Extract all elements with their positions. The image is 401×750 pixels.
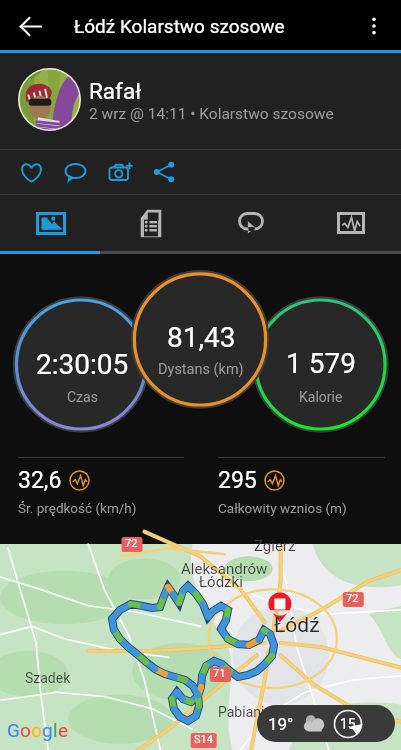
staticText: o — [31, 719, 42, 741]
staticText: Czas — [67, 389, 98, 405]
staticText: 81,43 — [167, 321, 236, 354]
staticText: Śr. prędkość (km/h) — [18, 500, 137, 516]
button[interactable]: Details — [101, 195, 201, 251]
staticText: Łódź Kolarstwo szosowe — [74, 15, 285, 37]
staticText: 295 — [218, 467, 257, 494]
button[interactable]: Weather 19 degrees — [257, 705, 395, 742]
button[interactable]: Analysis — [301, 195, 401, 251]
staticText: 1 579 — [286, 347, 356, 380]
staticText: 32,6 — [18, 467, 62, 494]
staticText: Kalorie — [299, 389, 343, 405]
staticText: g — [42, 719, 53, 741]
button[interactable]: Segments — [201, 195, 301, 251]
staticText: G — [7, 719, 20, 741]
button[interactable]: Add photo — [102, 154, 138, 190]
staticText: 2 wrz @ 14:11 • Kolarstwo szosowe — [89, 105, 334, 123]
staticText: Dystans (km) — [158, 361, 244, 378]
staticText: 72 — [346, 592, 359, 605]
staticText: e — [58, 719, 69, 741]
staticText: Łódź — [274, 613, 320, 638]
staticText: 19° — [268, 714, 294, 734]
staticText: S14 — [194, 733, 213, 746]
staticText: Szadek — [25, 670, 71, 686]
button[interactable]: 295 — [218, 457, 385, 516]
staticText: o — [20, 719, 31, 741]
staticText: Całkowity wznios (m) — [218, 500, 347, 516]
staticText: 71 — [213, 667, 226, 680]
staticText: 2:30:05 — [36, 348, 129, 381]
staticText: l — [53, 719, 58, 741]
staticText: Aleksandrów — [181, 560, 268, 578]
staticText: 15 — [340, 716, 356, 732]
staticText: Rafał — [89, 78, 142, 104]
button[interactable]: Back — [9, 5, 51, 47]
button[interactable]: Profile photo — [18, 68, 81, 131]
staticText: 72 — [125, 537, 138, 550]
button[interactable]: Share — [146, 154, 182, 190]
button[interactable]: More options — [354, 6, 394, 46]
staticText: Zgierz — [254, 537, 296, 555]
button[interactable]: Like — [13, 154, 49, 190]
button[interactable]: Photos — [0, 195, 101, 251]
staticText: Łódzki — [199, 573, 243, 591]
button[interactable]: 32,6 — [18, 457, 184, 516]
button[interactable]: Comment — [57, 154, 93, 190]
staticText: Pabianice — [218, 704, 280, 720]
